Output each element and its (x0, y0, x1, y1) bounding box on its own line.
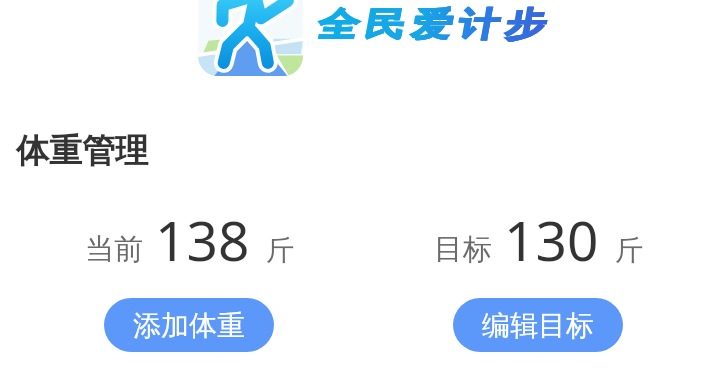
staticText: 目标 (434, 231, 492, 268)
staticText: 138 (155, 202, 250, 277)
other: 全民爱计步 (198, 0, 303, 76)
staticText: 全民爱计步 (312, 4, 546, 45)
button[interactable]: 添加体重 (104, 298, 274, 352)
staticText: 斤 (615, 233, 643, 268)
staticText: 添加体重 (133, 308, 245, 343)
staticText: 斤 (266, 233, 294, 268)
staticText: 体重管理 (16, 130, 148, 172)
staticText: 编辑目标 (482, 308, 594, 343)
staticText: 全民爱计步 (312, 4, 546, 45)
staticText: 130 (504, 202, 599, 277)
button[interactable]: 编辑目标 (453, 298, 623, 352)
staticText: 全民爱计步 (311, 4, 545, 45)
staticText: 当前 (85, 231, 143, 268)
